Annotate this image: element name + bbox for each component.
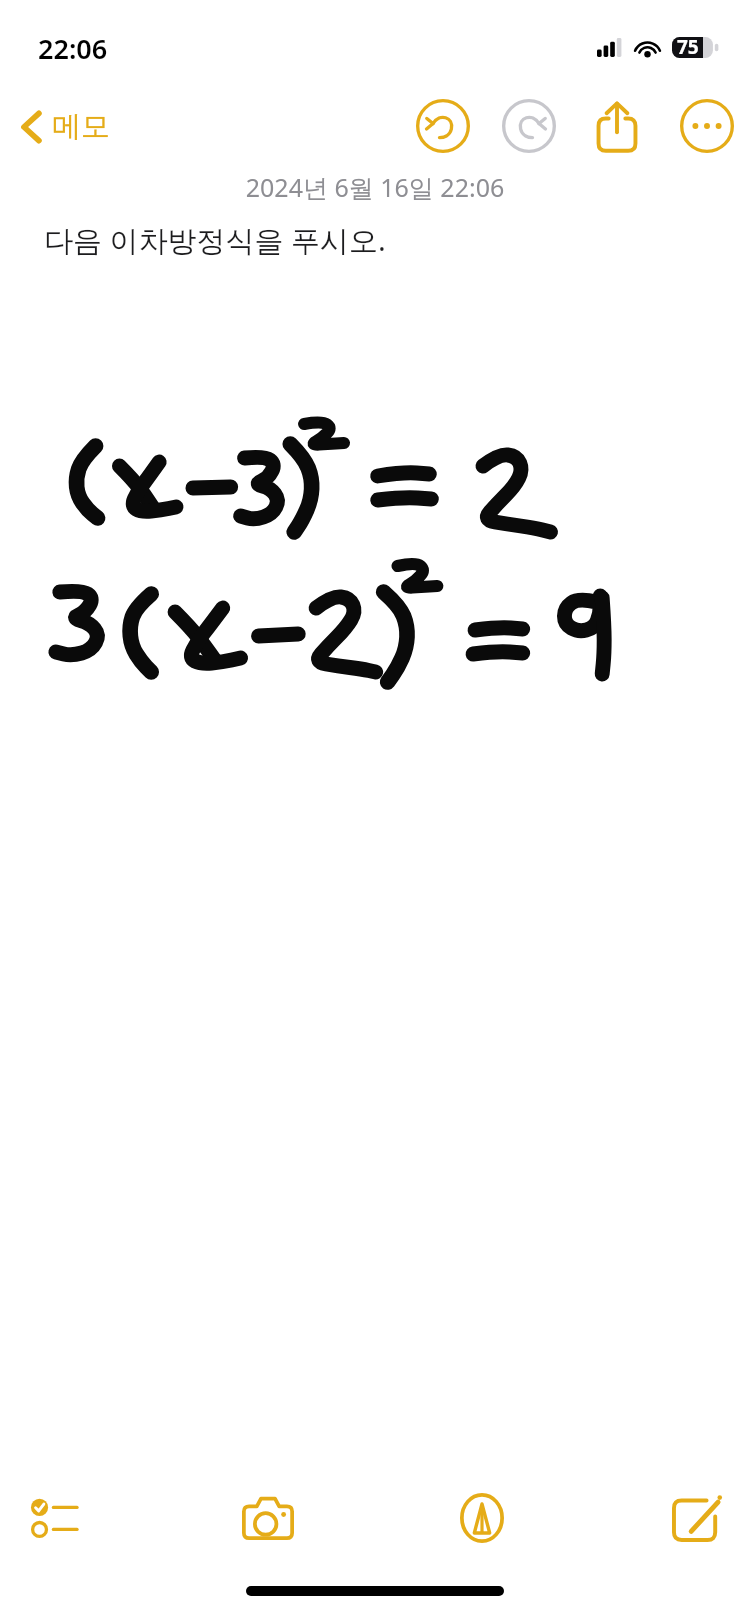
staticText: 75 xyxy=(677,34,699,60)
staticText: 2024년 6월 16일 22:06 xyxy=(0,170,750,204)
button[interactable]: Redo xyxy=(496,93,562,159)
button[interactable]: 메모 xyxy=(12,102,118,151)
button[interactable]: More options xyxy=(674,93,740,159)
staticText: 22:06 xyxy=(38,30,108,67)
button[interactable]: Undo xyxy=(410,93,476,159)
button[interactable]: Camera xyxy=(220,1470,316,1566)
button[interactable]: Checklist xyxy=(6,1470,102,1566)
button[interactable]: Share xyxy=(584,93,650,159)
button[interactable]: New note xyxy=(648,1470,744,1566)
button[interactable]: Markup xyxy=(434,1470,530,1566)
staticText: 메모 xyxy=(52,108,110,145)
staticText: 다음 이차방정식을 푸시오. xyxy=(44,220,386,260)
